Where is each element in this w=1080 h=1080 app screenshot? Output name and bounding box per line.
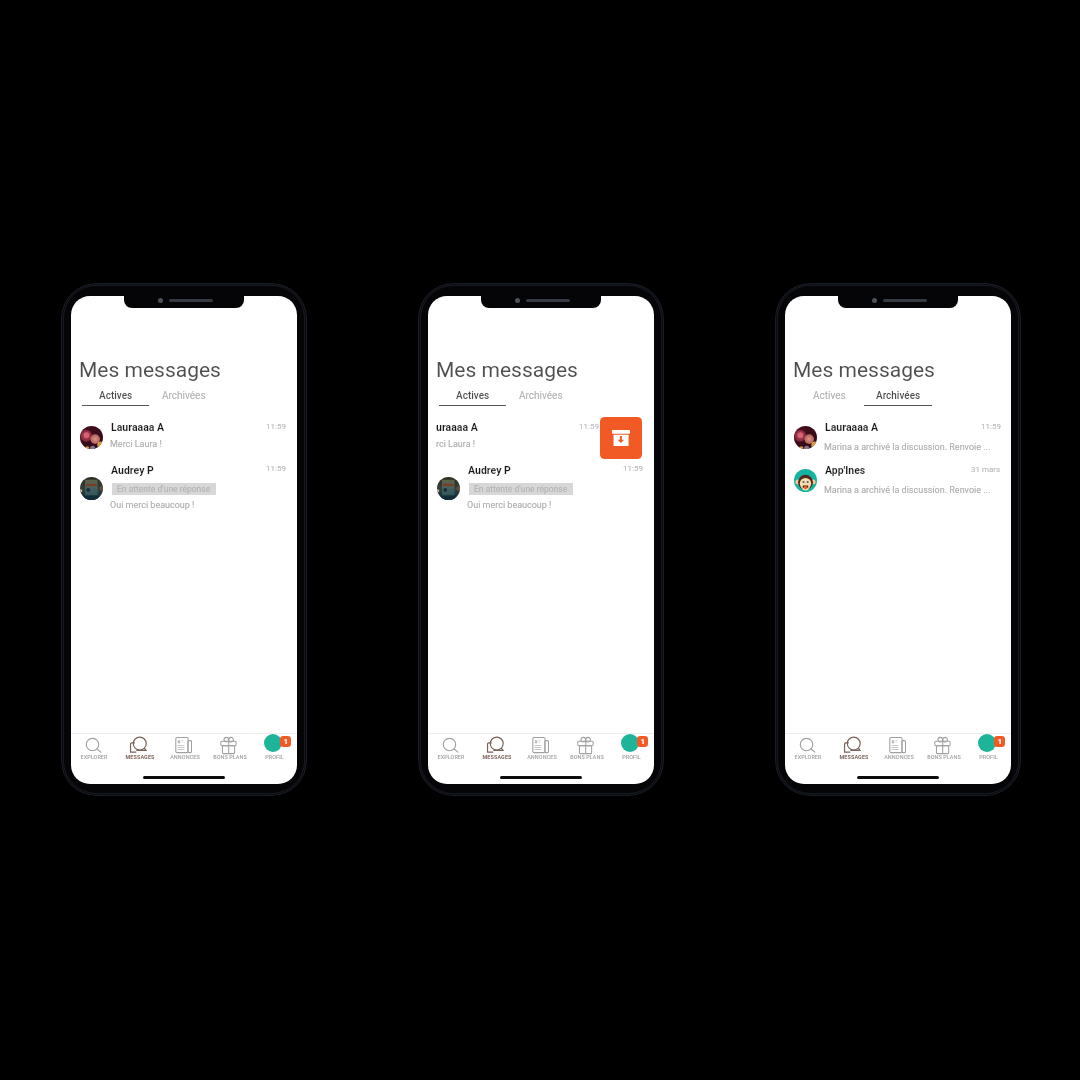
staticText: BONS PLANS	[570, 754, 604, 760]
staticText: Merci Laura !	[110, 439, 162, 450]
staticText: Archivées	[519, 390, 563, 402]
staticText: ANNONCES	[884, 754, 914, 760]
button[interactable]: Profil	[609, 736, 654, 768]
button[interactable]: EXPLORER	[71, 736, 117, 768]
staticText: Archivées	[162, 390, 206, 402]
other: Profil	[974, 737, 1004, 753]
button[interactable]: BONS PLANS	[921, 736, 966, 768]
staticText: 1	[641, 738, 645, 746]
staticText: Actives	[456, 390, 490, 402]
staticText: Mes messages	[436, 358, 578, 383]
staticText: rci Laura !	[436, 439, 476, 450]
button[interactable]: EXPLORER	[785, 736, 831, 768]
staticText: Mes messages	[793, 358, 935, 383]
staticText: Mes messages	[79, 358, 221, 383]
staticText: Marina a archivé la discussion. Renvoie …	[824, 442, 991, 453]
staticText: Actives	[813, 390, 846, 402]
button[interactable]: Archivées	[507, 385, 575, 406]
button[interactable]: EXPLORER	[428, 736, 474, 768]
button[interactable]: Lauraaaa A	[71, 416, 297, 461]
staticText: EXPLORER	[437, 754, 465, 760]
staticText: PROFIL	[979, 754, 998, 760]
staticText: MESSAGES	[839, 754, 869, 760]
staticText: PROFIL	[265, 754, 284, 760]
staticText: BONS PLANS	[927, 754, 961, 760]
button[interactable]: Actives	[82, 385, 149, 406]
staticText: Archivées	[876, 390, 921, 402]
button[interactable]: BONS PLANS	[207, 736, 252, 768]
staticText: 11:59	[579, 422, 599, 431]
staticText: 11:59	[981, 422, 1001, 431]
button[interactable]: Actives	[439, 385, 506, 406]
staticText: EXPLORER	[794, 754, 822, 760]
staticText: 1	[998, 738, 1002, 746]
staticText: En attente d'une réponse	[474, 484, 568, 494]
button[interactable]: Audrey P	[428, 461, 654, 521]
button[interactable]: Actives	[796, 385, 863, 406]
staticText: BONS PLANS	[213, 754, 247, 760]
staticText: uraaaa A	[436, 421, 478, 433]
button[interactable]: ANNONCES	[876, 736, 921, 768]
staticText: EXPLORER	[80, 754, 108, 760]
button[interactable]: Audrey P	[71, 461, 297, 521]
staticText: Audrey P	[111, 464, 154, 476]
button[interactable]: Archiver	[600, 417, 642, 459]
staticText: Oui merci beaucoup !	[467, 500, 552, 511]
staticText: 1	[284, 738, 288, 746]
button[interactable]: Archivées	[864, 385, 932, 406]
button[interactable]: MESSAGES	[474, 736, 519, 768]
staticText: PROFIL	[622, 754, 641, 760]
staticText: Audrey P	[468, 464, 511, 476]
staticText: 11:59	[623, 464, 643, 473]
staticText: MESSAGES	[125, 754, 155, 760]
button[interactable]: ANNONCES	[519, 736, 564, 768]
staticText: 11:59	[266, 422, 286, 431]
staticText: App'Ines	[825, 464, 866, 476]
button[interactable]: Archivées	[150, 385, 218, 406]
staticText: MESSAGES	[482, 754, 512, 760]
staticText: Lauraaaa A	[111, 421, 165, 433]
other: Profil	[260, 737, 290, 753]
staticText: Marina a archivé la discussion. Renvoie …	[824, 485, 991, 496]
staticText: ANNONCES	[527, 754, 557, 760]
staticText: 11:59	[266, 464, 286, 473]
button[interactable]: Profil	[252, 736, 297, 768]
button[interactable]: MESSAGES	[117, 736, 162, 768]
staticText: Lauraaaa A	[825, 421, 879, 433]
other: Profil	[617, 737, 647, 753]
staticText: 31 mars	[971, 465, 1001, 474]
button[interactable]: App'Ines	[785, 459, 1011, 502]
button[interactable]: BONS PLANS	[564, 736, 609, 768]
button[interactable]: Lauraaaa A	[785, 416, 1011, 459]
staticText: Oui merci beaucoup !	[110, 500, 195, 511]
button[interactable]: Profil	[966, 736, 1011, 768]
button[interactable]: uraaaa A	[428, 416, 654, 461]
button[interactable]: MESSAGES	[831, 736, 876, 768]
staticText: ANNONCES	[170, 754, 200, 760]
staticText: Actives	[99, 390, 133, 402]
staticText: En attente d'une réponse	[117, 484, 211, 494]
button[interactable]: ANNONCES	[162, 736, 207, 768]
